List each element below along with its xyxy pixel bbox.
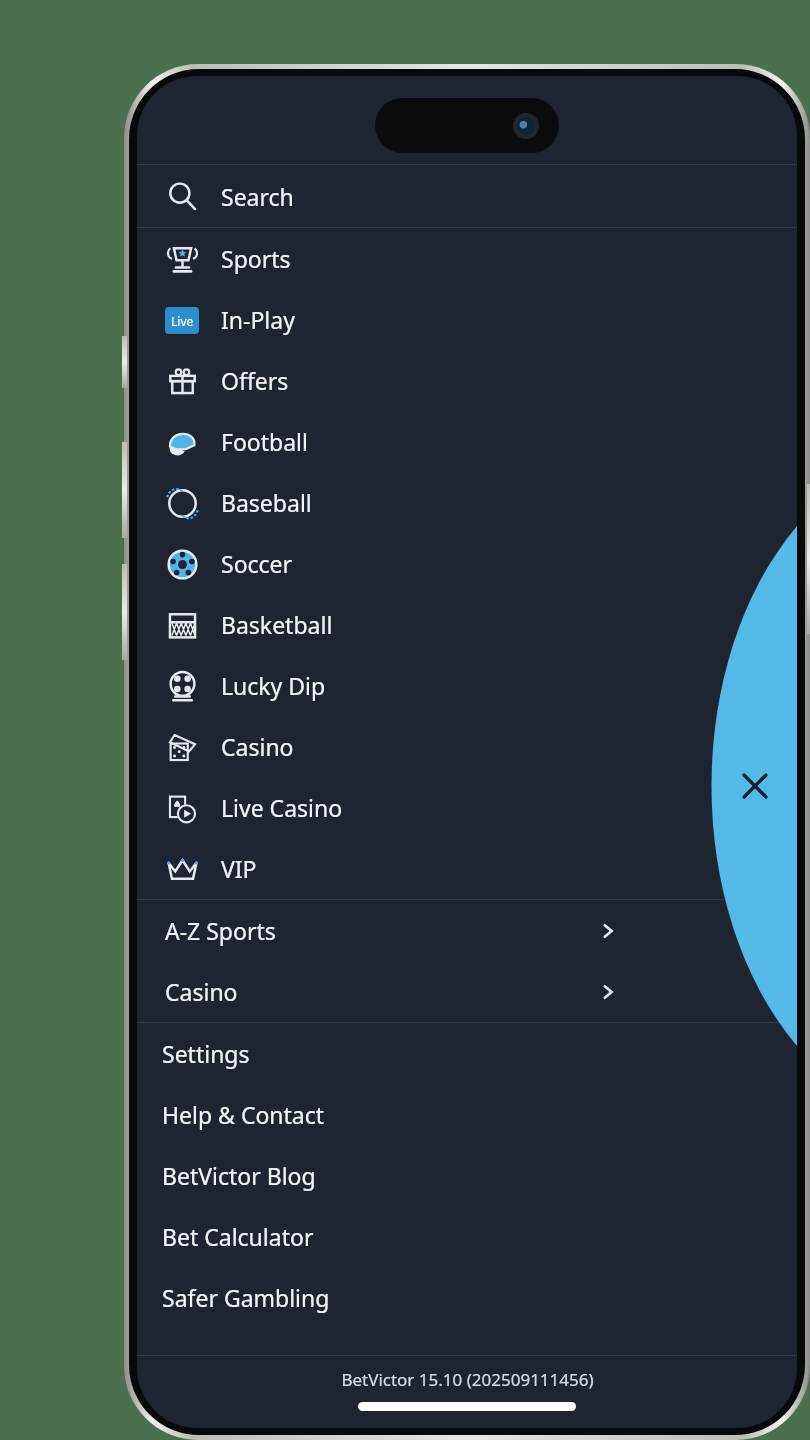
staticText: Basketball (221, 609, 333, 640)
button[interactable]: Live (137, 289, 797, 350)
staticText: BetVictor Blog (162, 1160, 316, 1191)
button[interactable]: Live Casino (137, 777, 797, 838)
staticText: Casino (165, 976, 238, 1007)
staticText: Safer Gambling (162, 1282, 330, 1313)
staticText: Bet Calculator (162, 1221, 314, 1252)
staticText: Live Casino (221, 792, 343, 823)
button[interactable]: Help & Contact (137, 1084, 797, 1145)
staticText: Lucky Dip (221, 670, 326, 701)
button[interactable]: Football (137, 411, 797, 472)
button[interactable]: Casino (137, 716, 797, 777)
button[interactable]: Safer Gambling (137, 1267, 797, 1328)
button[interactable]: A-Z Sports (137, 900, 797, 961)
button[interactable]: Sports (137, 228, 797, 289)
button[interactable]: Bet Calculator (137, 1206, 797, 1267)
staticText: Settings (162, 1038, 250, 1069)
staticText: Football (221, 426, 308, 457)
staticText: Sports (221, 243, 291, 274)
button[interactable]: Soccer (137, 533, 797, 594)
staticText: VIP (221, 853, 257, 884)
staticText: Casino (221, 731, 294, 762)
staticText: Offers (221, 365, 289, 396)
staticText: Search (221, 181, 294, 212)
staticText: Soccer (221, 548, 293, 579)
staticText: Live (171, 313, 194, 329)
button[interactable]: Search (137, 165, 797, 227)
button[interactable]: Offers (137, 350, 797, 411)
staticText: Help & Contact (162, 1099, 325, 1130)
button[interactable]: Settings (137, 1023, 797, 1084)
button[interactable]: Casino (137, 961, 797, 1022)
button[interactable]: BetVictor Blog (137, 1145, 797, 1206)
staticText: In-Play (221, 304, 295, 335)
button[interactable]: Lucky Dip (137, 655, 797, 716)
button[interactable]: Close menu (677, 526, 797, 1046)
button[interactable]: VIP (137, 838, 797, 899)
button[interactable]: Baseball (137, 472, 797, 533)
staticText: A-Z Sports (165, 915, 276, 946)
staticText: BetVictor 15.10 (202509111456) (341, 1368, 594, 1391)
button[interactable]: Basketball (137, 594, 797, 655)
staticText: Baseball (221, 487, 312, 518)
